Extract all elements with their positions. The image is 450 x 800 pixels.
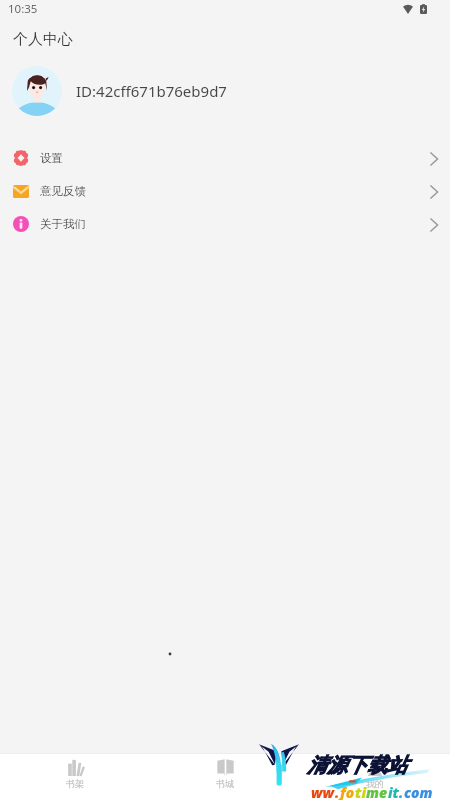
staticText: fo — [340, 783, 355, 800]
staticText: 设置 — [40, 151, 63, 165]
button[interactable]: 意见反馈 — [0, 174, 450, 207]
staticText: ti — [355, 783, 366, 800]
button[interactable]: 书架 — [0, 754, 150, 800]
staticText: 意见反馈 — [40, 184, 86, 198]
staticText: . — [335, 783, 340, 800]
button[interactable]: 设置 — [0, 141, 450, 174]
button[interactable]: Avatar — [0, 56, 450, 126]
button[interactable]: 我的 — [300, 754, 450, 800]
other: Avatar — [12, 66, 62, 116]
staticText: me — [366, 783, 388, 800]
staticText: ID:42cff671b76eb9d7 — [76, 81, 227, 101]
staticText: 书架 — [66, 778, 84, 789]
button[interactable]: 书城 — [150, 754, 300, 800]
staticText: 书城 — [216, 778, 234, 789]
staticText: 10:35 — [8, 1, 38, 17]
staticText: ww — [311, 783, 335, 800]
staticText: 个人中心 — [13, 30, 73, 49]
other: Logo — [259, 741, 299, 786]
staticText: 我的 — [366, 778, 384, 789]
staticText: 关于我们 — [40, 217, 86, 231]
button[interactable]: 关于我们 — [0, 207, 450, 240]
staticText: it — [388, 783, 399, 800]
staticText: . — [399, 783, 404, 800]
staticText: com — [404, 783, 433, 800]
